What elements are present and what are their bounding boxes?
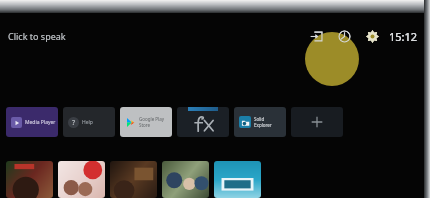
staticText: Help	[82, 119, 93, 126]
button[interactable]	[214, 161, 261, 198]
button[interactable]: Settings	[361, 25, 383, 47]
staticText: Media Player	[25, 119, 56, 126]
button[interactable]: Inputs	[305, 25, 327, 47]
button[interactable]	[110, 161, 157, 198]
button[interactable]	[291, 107, 343, 137]
staticText: ?	[72, 118, 76, 128]
button[interactable]	[177, 107, 229, 137]
button[interactable]	[6, 161, 53, 198]
button[interactable]: ?	[63, 107, 115, 137]
staticText: 15:12	[389, 29, 418, 44]
staticText: Store	[139, 122, 151, 128]
button[interactable]: Timer	[333, 25, 355, 47]
button[interactable]	[162, 161, 209, 198]
staticText: Google Play	[139, 116, 165, 122]
button[interactable]: Click to speak	[6, 26, 68, 46]
staticText: Click to speak	[8, 30, 66, 42]
button[interactable]	[58, 161, 105, 198]
staticText: Explorer	[254, 122, 272, 128]
button[interactable]: Google Play	[120, 107, 172, 137]
button[interactable]: Solid	[234, 107, 286, 137]
button[interactable]: Media Player	[6, 107, 58, 137]
staticText: 15:12	[389, 29, 418, 44]
staticText: Solid	[254, 116, 265, 122]
